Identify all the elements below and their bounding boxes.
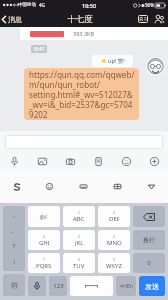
- button[interactable]: Avatar: [146, 57, 165, 76]
- button[interactable]: up! 赞!: [92, 55, 133, 67]
- staticText: @/.: [39, 213, 49, 221]
- button[interactable]: https://qun.qq.com/qqweb/ m/qun/qun_robo…: [24, 68, 139, 120]
- button[interactable]: Space: [70, 276, 113, 296]
- button[interactable]: More: [140, 152, 168, 170]
- staticText: 4G: [39, 2, 45, 8]
- staticText: 6: [113, 234, 116, 239]
- button[interactable]: Clipboard: [66, 170, 100, 203]
- button[interactable]: 换行: [133, 230, 165, 250]
- staticText: 7: [43, 257, 46, 262]
- button[interactable]: 123: [49, 276, 67, 296]
- button[interactable]: Emoji: [33, 170, 66, 203]
- button[interactable]: Camera: [56, 152, 84, 170]
- staticText: 9: [113, 257, 116, 262]
- button[interactable]: Files: [84, 152, 112, 170]
- button[interactable]: Sogou input: [0, 170, 33, 203]
- button[interactable]: Emoji: [112, 152, 140, 170]
- staticText: ，: [11, 211, 17, 219]
- button[interactable]: Voice input: [28, 276, 46, 296]
- button[interactable]: 发送: [139, 276, 165, 296]
- button[interactable]: 0: [133, 253, 165, 273]
- button[interactable]: 符: [3, 274, 25, 296]
- staticText: 十七度: [67, 14, 93, 25]
- button[interactable]: Message input: [5, 135, 163, 149]
- staticText: 123: [53, 282, 64, 290]
- staticText: ？: [11, 242, 17, 250]
- staticText: 56%: [145, 2, 154, 8]
- staticText: DEF: [109, 215, 120, 223]
- button[interactable]: 中/En: [116, 276, 136, 296]
- staticText: 符: [11, 281, 18, 290]
- button[interactable]: Voice message: [0, 152, 28, 170]
- staticText: 5: [78, 234, 81, 239]
- staticText: 4: [43, 234, 46, 239]
- staticText: 。: [11, 227, 17, 235]
- staticText: MNO: [107, 239, 122, 247]
- staticText: 消息: [8, 15, 22, 24]
- staticText: GHI: [39, 239, 50, 247]
- button[interactable]: 9: [98, 253, 130, 273]
- button[interactable]: 7: [28, 253, 60, 273]
- button[interactable]: 10:47: [33, 46, 45, 52]
- staticText: ！: [11, 258, 17, 266]
- staticText: 中国移动: [18, 2, 36, 8]
- staticText: 393.3KB: [73, 30, 95, 37]
- button[interactable]: Layouts: [100, 170, 134, 203]
- staticText: 0: [147, 259, 151, 267]
- button[interactable]: @/.: [28, 206, 60, 227]
- staticText: WXYZ: [106, 262, 122, 270]
- button[interactable]: Group card: [135, 11, 151, 27]
- staticText: up! 赞!: [108, 57, 125, 65]
- staticText: 发送: [145, 282, 159, 291]
- staticText: 换行: [143, 236, 155, 244]
- staticText: 10:47: [33, 46, 45, 52]
- staticText: ABC: [73, 215, 85, 223]
- button[interactable]: 393.3KB: [20, 27, 168, 40]
- button[interactable]: 2: [63, 206, 95, 227]
- staticText: https://qun.qq.com/qqweb/ m/qun/qun_robo…: [29, 69, 135, 120]
- staticText: JKL: [75, 239, 84, 247]
- staticText: TUV: [73, 262, 85, 270]
- button[interactable]: Theme: [134, 170, 168, 203]
- staticText: 8: [78, 257, 81, 262]
- button[interactable]: 5: [63, 230, 95, 250]
- button[interactable]: Back: [0, 10, 25, 28]
- button[interactable]: Photo: [28, 152, 56, 170]
- staticText: 10:50: [82, 2, 97, 9]
- staticText: 中/En: [120, 283, 133, 290]
- button[interactable]: Members: [151, 11, 167, 27]
- button[interactable]: 6: [98, 230, 130, 250]
- button[interactable]: 3: [98, 206, 130, 227]
- staticText: 2: [78, 210, 81, 215]
- button[interactable]: 4: [28, 230, 60, 250]
- staticText: PQRS: [36, 262, 52, 270]
- button[interactable]: ，: [3, 206, 25, 271]
- button[interactable]: 8: [63, 253, 95, 273]
- staticText: 3: [113, 210, 116, 215]
- button[interactable]: Delete: [133, 206, 165, 227]
